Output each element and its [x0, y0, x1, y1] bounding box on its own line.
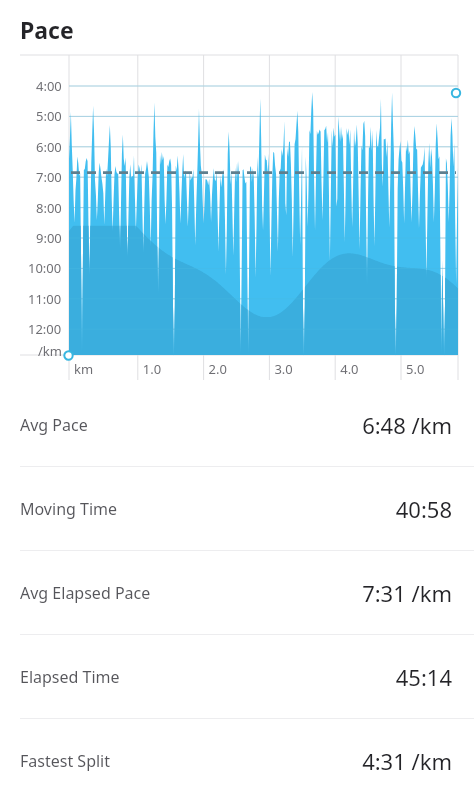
staticText: 6:48 /km: [362, 410, 452, 440]
button[interactable]: Avg Pace: [0, 383, 474, 466]
button[interactable]: Fastest Split: [0, 719, 474, 802]
button[interactable]: Elapsed Time: [0, 635, 474, 718]
staticText: Pace: [20, 14, 74, 45]
staticText: Avg Pace: [20, 414, 88, 436]
staticText: 45:14: [395, 662, 452, 692]
staticText: 4:31 /km: [362, 746, 452, 776]
staticText: Elapsed Time: [20, 666, 120, 688]
button[interactable]: Avg Elapsed Pace: [0, 551, 474, 634]
staticText: Avg Elapsed Pace: [20, 582, 151, 604]
staticText: 7:31 /km: [362, 578, 452, 608]
staticText: Fastest Split: [20, 750, 111, 772]
staticText: Moving Time: [20, 498, 118, 520]
button[interactable]: Moving Time: [0, 467, 474, 550]
staticText: 40:58: [395, 494, 452, 524]
